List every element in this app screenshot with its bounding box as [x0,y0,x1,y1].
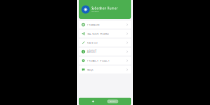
staticText: Version 1.0 [91,11,99,12]
button[interactable]: RATE US [79,39,131,47]
staticText: RATE US [87,41,97,44]
staticText: PREMIUM [87,23,99,26]
staticText: PRIVACY POLICY [87,59,110,62]
staticText: Sudarshan Kumar [91,7,117,10]
staticText: INSTALL [110,100,116,102]
staticText: TELL YOUR FRIEND [87,32,109,35]
staticText: FAQs [87,68,93,71]
button[interactable]: ABOUT [79,48,131,56]
staticText: ABOUT [87,50,96,53]
button[interactable]: FAQs [79,66,131,74]
button[interactable]: INSTALL [79,98,131,105]
button[interactable]: TELL YOUR FRIEND [79,30,131,38]
button[interactable]: PREMIUM [79,21,131,29]
button[interactable]: PRIVACY POLICY [79,57,131,65]
